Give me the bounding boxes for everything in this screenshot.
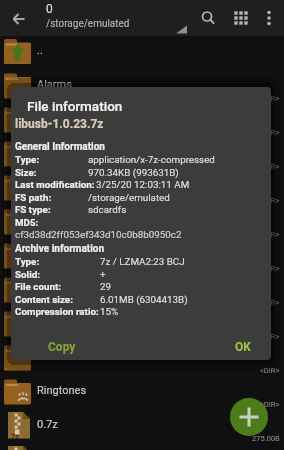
button[interactable]: Copy xyxy=(39,335,85,359)
staticText: Notifications xyxy=(37,282,100,295)
button[interactable] xyxy=(230,398,268,436)
staticText: 275.00B xyxy=(252,434,280,443)
staticText: .. xyxy=(37,44,43,57)
button[interactable] xyxy=(0,0,38,36)
staticText: <DIR> xyxy=(260,162,280,171)
staticText: Ringtones xyxy=(37,384,87,397)
staticText: Podcasts xyxy=(37,350,84,363)
staticText: /storage/emulated xyxy=(88,192,170,203)
button[interactable]: Music xyxy=(0,240,284,274)
staticText: sdcardfs xyxy=(88,204,127,215)
staticText: cf3d38d2ff053ef343d10c0b8b0950c2 xyxy=(15,229,182,240)
staticText: libusb-1.0.23.7z xyxy=(15,117,104,131)
staticText: File count: xyxy=(15,281,62,292)
staticText: /storage/emulated xyxy=(46,18,130,30)
staticText: Android xyxy=(37,112,76,125)
button[interactable]: Ringtones xyxy=(0,376,284,410)
staticText: 3/25/20 12:03:11 AM xyxy=(96,179,190,190)
staticText: <DIR> xyxy=(260,366,280,375)
staticText: Download xyxy=(37,180,86,193)
staticText: Type: xyxy=(15,256,40,267)
button[interactable]: Android xyxy=(0,104,284,138)
staticText: <DIR> xyxy=(260,400,280,409)
staticText: 15% xyxy=(100,306,119,317)
staticText: 970.34KB (993631B) xyxy=(88,167,179,178)
staticText: Content size: xyxy=(15,294,73,305)
staticText: Music xyxy=(37,248,67,261)
staticText: Type: xyxy=(15,154,40,165)
staticText: + xyxy=(100,269,106,280)
staticText: 6.01MB (6304413B) xyxy=(100,294,188,305)
button[interactable]: .. xyxy=(0,36,284,70)
staticText: 7z / LZMA2:23 BCJ xyxy=(100,256,185,267)
button[interactable]: 7z xyxy=(0,410,284,444)
staticText: Alarms xyxy=(37,78,72,91)
button[interactable]: OK xyxy=(221,335,264,359)
button[interactable]: Alarms xyxy=(0,70,284,104)
staticText: FS type: xyxy=(15,204,51,215)
staticText: <DIR> xyxy=(260,94,280,103)
staticText: Copy xyxy=(48,340,76,354)
staticText: Compression ratio: xyxy=(15,306,99,317)
staticText: <DIR> xyxy=(260,298,280,307)
button[interactable]: 7z xyxy=(0,444,284,450)
staticText: FS path: xyxy=(15,192,52,203)
button[interactable]: DCIM xyxy=(0,138,284,172)
staticText: 0.7z xyxy=(37,418,58,431)
staticText: Movies xyxy=(37,214,73,227)
button[interactable] xyxy=(224,0,257,36)
button[interactable]: Notifications xyxy=(0,274,284,308)
button[interactable]: Podcasts xyxy=(0,342,284,376)
button[interactable]: Download xyxy=(0,172,284,206)
staticText: 0 xyxy=(46,2,53,16)
staticText: <DIR> xyxy=(260,230,280,239)
button[interactable] xyxy=(257,0,284,36)
button[interactable] xyxy=(192,0,224,36)
staticText: <DIR> xyxy=(260,332,280,341)
staticText: Solid: xyxy=(15,269,41,280)
staticText: application/x-7z-compressed xyxy=(88,154,215,165)
staticText: <DIR> xyxy=(260,196,280,205)
staticText: Pictures xyxy=(37,316,78,329)
staticText: <DIR> xyxy=(260,128,280,137)
staticText: Last modification: xyxy=(15,179,95,190)
staticText: File information xyxy=(27,98,123,114)
button[interactable]: Movies xyxy=(0,206,284,240)
staticText: 29 xyxy=(100,281,112,292)
staticText: Size: xyxy=(15,167,37,178)
button[interactable]: Pictures xyxy=(0,308,284,342)
staticText: MD5: xyxy=(15,217,39,228)
staticText: 7z xyxy=(11,432,20,441)
staticText: Archive information xyxy=(15,243,105,255)
staticText: OK xyxy=(235,340,251,354)
staticText: <DIR> xyxy=(260,264,280,273)
staticText: DCIM xyxy=(37,146,64,159)
button[interactable]: 0 xyxy=(46,2,181,30)
staticText: General Information xyxy=(15,141,105,153)
